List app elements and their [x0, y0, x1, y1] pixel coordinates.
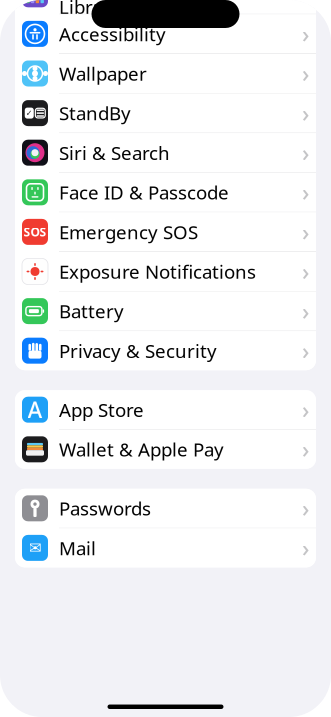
button[interactable]: Wallet & Apple Pay	[15, 430, 316, 469]
button[interactable]: Home Screen & App Library	[15, 0, 316, 14]
staticText: ›	[302, 138, 309, 168]
button[interactable]: ✉	[15, 528, 316, 567]
staticText: Wallpaper	[59, 61, 147, 86]
staticText: ›	[302, 395, 309, 425]
staticText: Battery	[59, 299, 124, 323]
staticText: ✉	[28, 539, 41, 557]
button[interactable]: Wallpaper	[15, 54, 316, 93]
staticText: App Store	[59, 397, 144, 422]
staticText: ›	[302, 493, 309, 523]
staticText: A	[27, 395, 42, 425]
staticText: ›	[302, 19, 309, 49]
staticText: ›	[302, 177, 309, 207]
staticText: ›	[302, 296, 309, 326]
staticText: ›	[302, 217, 309, 247]
button[interactable]: Accessibility	[15, 14, 316, 53]
staticText: StandBy	[59, 101, 131, 125]
staticText: Siri & Search	[59, 140, 170, 165]
staticText: Emergency SOS	[59, 219, 198, 244]
button[interactable]: Face ID & Passcode	[15, 173, 316, 212]
staticText: ›	[302, 533, 309, 563]
staticText: ✓	[26, 109, 33, 118]
button[interactable]: Exposure Notifications	[15, 252, 316, 291]
staticText: ›	[302, 256, 309, 286]
staticText: Wallet & Apple Pay	[59, 437, 224, 462]
button[interactable]: Siri & Search	[15, 133, 316, 172]
staticText: Mail	[59, 535, 96, 560]
staticText: Home Screen & App Library	[59, 0, 235, 19]
button[interactable]: Battery	[15, 292, 316, 331]
staticText: ›	[302, 434, 309, 464]
staticText: ›	[302, 98, 309, 128]
staticText: Exposure Notifications	[59, 259, 256, 284]
button[interactable]: ✓	[15, 94, 316, 133]
button[interactable]: A	[15, 390, 316, 429]
staticText: ›	[302, 58, 309, 88]
staticText: Privacy & Security	[59, 338, 217, 363]
button[interactable]: SOS	[15, 212, 316, 251]
staticText: ›	[302, 336, 309, 366]
button[interactable]: Privacy & Security	[15, 331, 316, 370]
staticText: SOS	[23, 224, 46, 240]
button[interactable]: Passwords	[15, 489, 316, 528]
staticText: Passwords	[59, 496, 151, 521]
staticText: ›	[302, 0, 309, 9]
staticText: Face ID & Passcode	[59, 180, 229, 205]
staticText: Accessibility	[59, 21, 166, 46]
